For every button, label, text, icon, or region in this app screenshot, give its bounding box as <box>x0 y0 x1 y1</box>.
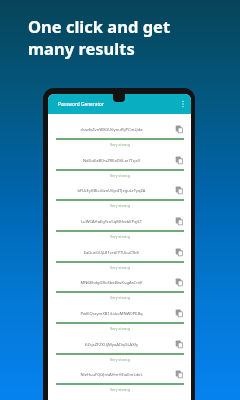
button[interactable]: LuWCAHaEgYcu5qMHzzbEPqJLT <box>48 213 191 244</box>
staticText: rkiwfxZvnWXGU6youf5jPCmLJda <box>48 127 175 133</box>
staticText: NdGuEaB0rsZREoD6Lzz7TzjsV <box>48 158 175 164</box>
button[interactable]: Copy password <box>175 248 184 257</box>
button[interactable]: Copy password <box>175 156 184 165</box>
staticText: Very strong <box>110 295 130 300</box>
staticText: Very strong <box>110 326 130 331</box>
button[interactable]: EaGuxGUjL81zrsEYTUkuCRcE <box>48 244 191 275</box>
staticText: MN68hdgGRuSbaI6wXugAsCmK <box>48 280 175 286</box>
staticText: Very strong <box>110 265 130 270</box>
staticText: Password Generator <box>58 101 105 108</box>
button[interactable]: MN68hdgGRuSbaI6wXugAsCmK <box>48 274 191 305</box>
staticText: One click and get <box>28 15 171 37</box>
staticText: EaGuxGUjL81zrsEYTUkuCRcE <box>48 250 175 256</box>
button[interactable]: fiZrjxZFZXUjMyuADqGLAXfy <box>48 336 191 367</box>
button[interactable]: Copy password <box>175 278 184 287</box>
button[interactable]: Copy password <box>175 217 184 226</box>
button[interactable]: bFLkEyKBLuGzoU6jx4TJeguLrTyqZA <box>48 182 191 213</box>
staticText: Very strong <box>110 387 130 392</box>
button[interactable]: NleHuuFQGJnsAHmHEiuEmLdeL <box>48 366 191 397</box>
button[interactable]: More options <box>179 100 187 108</box>
button[interactable]: Copy password <box>175 340 184 349</box>
button[interactable]: rkiwfxZvnWXGU6youf5jPCmLJda <box>48 121 191 152</box>
staticText: NleHuuFQGJnsAHmHEiuEmLdeL <box>48 372 175 378</box>
staticText: many results <box>28 37 135 59</box>
button[interactable]: PwlEQczymXB1iLskoMNW0PEBq <box>48 305 191 336</box>
staticText: Very strong <box>110 357 130 362</box>
staticText: Very strong <box>110 142 130 147</box>
staticText: Very strong <box>110 203 130 208</box>
staticText: bFLkEyKBLuGzoU6jx4TJeguLrTyqZA <box>48 188 175 194</box>
staticText: Very strong <box>110 173 130 178</box>
button[interactable]: Copy password <box>175 186 184 195</box>
staticText: PwlEQczymXB1iLskoMNW0PEBq <box>48 311 175 317</box>
button[interactable]: Copy password <box>175 370 184 379</box>
staticText: Very strong <box>110 234 130 239</box>
staticText: fiZrjxZFZXUjMyuADqGLAXfy <box>48 342 175 348</box>
staticText: LuWCAHaEgYcu5qMHzzbEPqJLT <box>48 219 175 225</box>
button[interactable]: Copy password <box>175 309 184 318</box>
button[interactable]: NdGuEaB0rsZREoD6Lzz7TzjsV <box>48 152 191 183</box>
button[interactable]: Password Generator <box>48 94 191 114</box>
button[interactable]: Copy password <box>175 125 184 134</box>
